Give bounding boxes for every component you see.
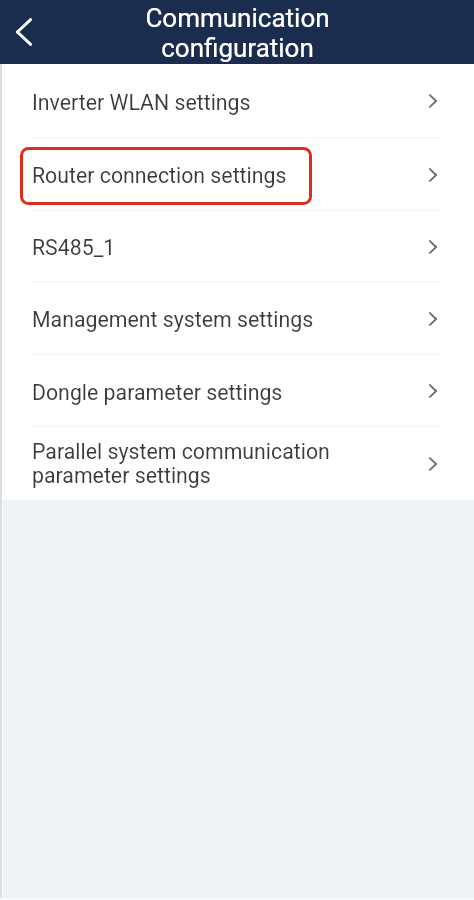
staticText: Dongle parameter settings xyxy=(32,380,384,405)
staticText: Router connection settings xyxy=(32,163,384,188)
staticText: Communication configuration xyxy=(145,3,330,63)
staticText: Inverter WLAN settings xyxy=(32,90,384,115)
button[interactable]: Parallel system communication parameter … xyxy=(0,427,474,500)
button[interactable]: Router connection settings xyxy=(0,138,474,211)
button[interactable]: Management system settings xyxy=(0,282,474,355)
staticText: Parallel system communication parameter … xyxy=(32,439,384,489)
button[interactable]: RS485_1 xyxy=(0,211,474,282)
button[interactable]: Inverter WLAN settings xyxy=(0,64,474,138)
staticText: Management system settings xyxy=(32,307,384,332)
staticText: RS485_1 xyxy=(32,235,384,260)
button[interactable]: Back xyxy=(0,8,48,56)
button[interactable]: Dongle parameter settings xyxy=(0,355,474,427)
